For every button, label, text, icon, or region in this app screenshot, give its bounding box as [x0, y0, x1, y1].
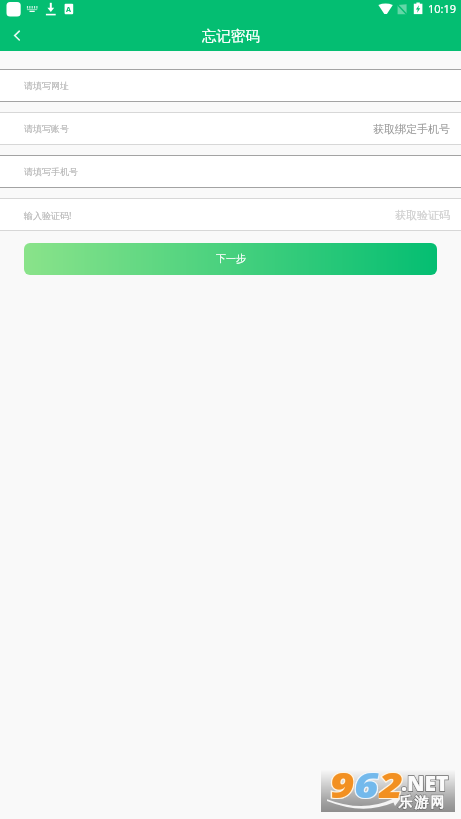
button[interactable]: 请填写网址 — [0, 70, 450, 101]
staticText: 输入验证码! — [24, 209, 72, 221]
button[interactable]: 获取验证码 — [389, 199, 461, 230]
staticText: 请填写账号 — [24, 123, 69, 134]
staticText: .NET — [401, 769, 449, 798]
staticText: 9 — [330, 760, 354, 803]
staticText: 请填写手机号 — [24, 166, 78, 177]
staticText: 乐游网 — [398, 794, 447, 812]
button[interactable]: 输入验证码! — [0, 199, 389, 230]
button[interactable]: 获取绑定手机号 — [367, 113, 461, 144]
staticText: 获取绑定手机号 — [373, 122, 450, 136]
staticText: 获取验证码 — [395, 208, 450, 222]
staticText: 10:19 — [428, 1, 457, 16]
staticText: 忘记密码 — [202, 27, 260, 45]
staticText: .NET — [401, 769, 449, 798]
staticText: 6 — [354, 760, 379, 803]
staticText: 乐游网 — [398, 794, 447, 812]
button[interactable]: Back — [0, 22, 30, 51]
staticText: 2 — [379, 760, 403, 803]
staticText: 6 — [354, 760, 379, 803]
button[interactable]: 下一步 — [24, 243, 437, 275]
staticText: 下一步 — [216, 252, 246, 265]
button[interactable]: 请填写手机号 — [0, 156, 450, 187]
staticText: A — [66, 4, 71, 14]
staticText: 9 — [330, 760, 354, 803]
staticText: 请填写网址 — [24, 80, 69, 91]
button[interactable]: 请填写账号 — [0, 113, 367, 144]
staticText: 2 — [379, 760, 403, 803]
